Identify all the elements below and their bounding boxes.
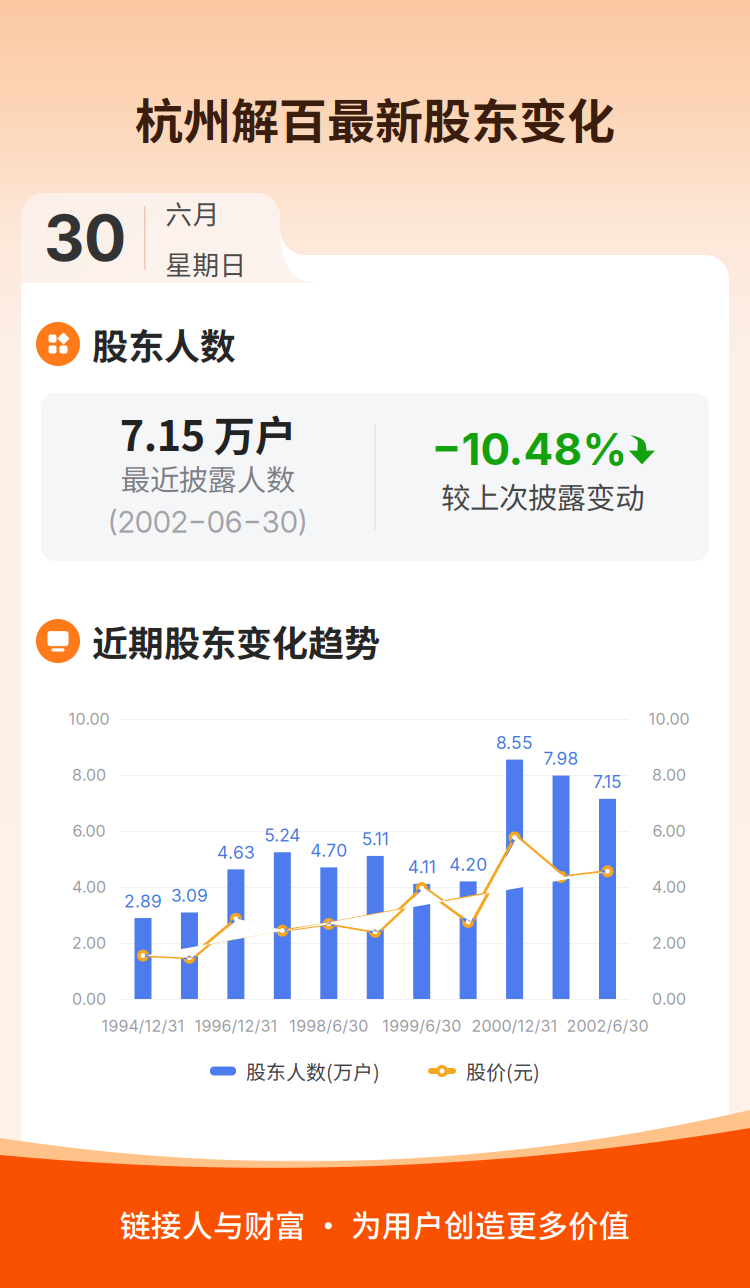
staticText: 最近披露人数 [121,457,295,499]
staticText: 7.15 万户 [120,403,296,463]
staticText: 近期股东变化趋势 [92,615,380,667]
staticText: 1999/6/30 [382,1016,461,1036]
staticText: 股东人数(万户) [246,1056,380,1085]
staticText: 8.00 [72,765,106,785]
staticText: 股价(元) [466,1056,540,1085]
staticText: 0.00 [72,989,106,1009]
staticText: 4.11 [408,856,436,877]
staticText: 星期日 [165,244,246,283]
staticText: 链接人与财富 · 为用户创造更多价值 [120,1202,630,1246]
staticText: 0.00 [652,989,686,1009]
staticText: 2.00 [72,933,106,953]
staticText: 六月 [165,193,219,232]
staticText: 1994/12/31 [101,1016,184,1036]
staticText: 10.00 [648,709,689,729]
staticText: 杭州解百最新股东变化 [135,83,615,153]
staticText: 8.00 [652,765,686,785]
staticText: 2.00 [652,933,686,953]
staticText: 1998/6/30 [289,1016,368,1036]
staticText: −10.48% [431,422,627,476]
staticText: 4.20 [449,854,487,875]
staticText: 7.15 [593,771,622,792]
staticText: 较上次披露变动 [441,475,644,517]
staticText: 3.09 [171,885,208,906]
staticText: 5.24 [264,825,300,846]
staticText: 股东人数 [92,318,236,370]
staticText: 4.63 [217,842,255,863]
staticText: (2002−06−30) [108,504,308,540]
staticText: 4.00 [72,877,106,897]
staticText: 2000/12/31 [472,1016,558,1036]
staticText: 8.55 [496,732,533,753]
staticText: 1996/12/31 [194,1016,277,1036]
staticText: 5.11 [362,828,389,849]
staticText: 2002/6/30 [566,1016,648,1036]
staticText: 6.00 [72,821,105,841]
staticText: 4.70 [310,840,347,861]
staticText: 30 [44,200,126,276]
staticText: 4.00 [652,877,686,897]
staticText: 6.00 [652,821,685,841]
staticText: 2.89 [124,891,162,912]
staticText: 7.98 [543,748,578,769]
staticText: 10.00 [68,709,109,729]
